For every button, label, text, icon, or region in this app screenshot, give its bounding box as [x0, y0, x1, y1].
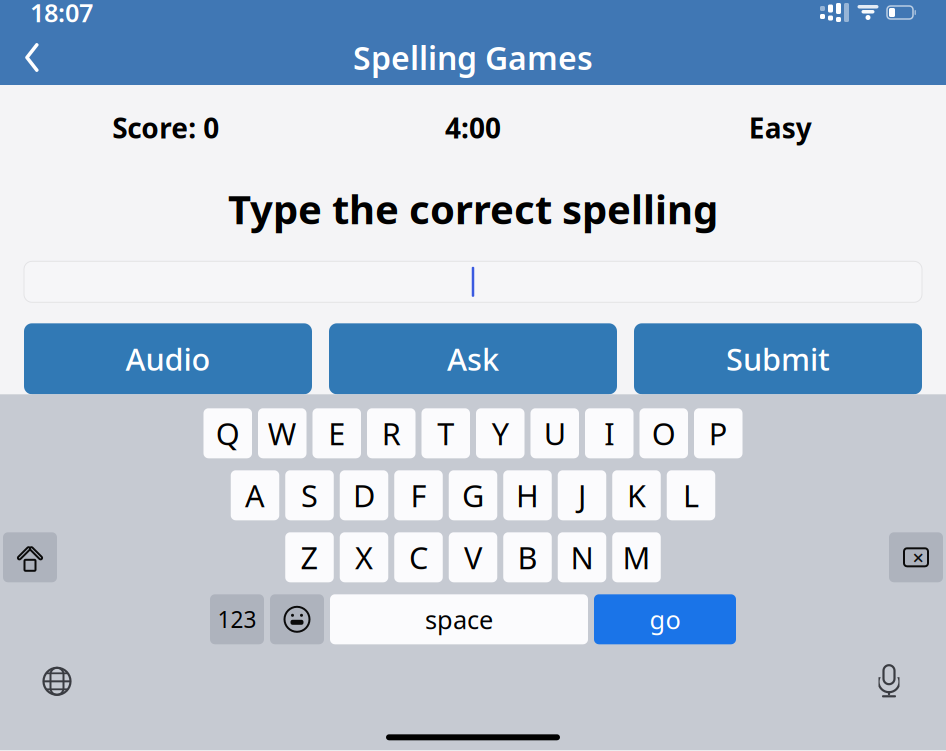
staticText: P	[709, 413, 728, 454]
button[interactable]: Shift	[3, 532, 57, 582]
staticText: S	[301, 475, 318, 516]
staticText: G	[462, 475, 484, 516]
button[interactable]: L	[667, 470, 715, 520]
button[interactable]: F	[394, 470, 443, 520]
button[interactable]: Dictation	[862, 658, 916, 704]
button[interactable]: Z	[285, 532, 334, 582]
staticText: Submit	[726, 338, 830, 379]
button[interactable]: T	[421, 408, 470, 458]
staticText: Score: 0	[112, 109, 219, 146]
staticText: K	[627, 475, 646, 516]
staticText: ×	[912, 544, 923, 571]
staticText: X	[355, 537, 373, 578]
button[interactable]: C	[394, 532, 443, 582]
staticText: Type the correct spelling	[228, 182, 718, 235]
button[interactable]: D	[340, 470, 388, 520]
button[interactable]: X	[340, 532, 388, 582]
staticText: N	[570, 537, 593, 578]
button[interactable]: V	[449, 532, 497, 582]
staticText: Z	[300, 537, 318, 578]
staticText: space	[425, 602, 493, 636]
staticText: Spelling Games	[353, 36, 593, 79]
button[interactable]: I	[585, 408, 633, 458]
staticText: M	[622, 537, 650, 578]
staticText: B	[517, 537, 537, 578]
button[interactable]: Back	[4, 34, 60, 80]
button[interactable]: W	[258, 408, 306, 458]
staticText: H	[516, 475, 539, 516]
button[interactable]: R	[367, 408, 415, 458]
button[interactable]: go	[594, 594, 736, 644]
button[interactable]: Emoji	[270, 594, 324, 644]
staticText: L	[683, 475, 699, 516]
staticText: 4:00	[445, 109, 501, 146]
staticText: E	[328, 413, 345, 454]
staticText: Easy	[749, 109, 812, 146]
button[interactable]: A	[231, 470, 279, 520]
staticText: W	[268, 413, 297, 454]
button[interactable]: U	[530, 408, 579, 458]
staticText: I	[604, 413, 614, 454]
button[interactable]: H	[503, 470, 552, 520]
button[interactable]: Next keyboard	[30, 658, 84, 704]
button[interactable]: M	[612, 532, 661, 582]
button[interactable]: N	[558, 532, 606, 582]
staticText: R	[382, 413, 401, 454]
button[interactable]: G	[449, 470, 497, 520]
button[interactable]: Audio	[24, 323, 312, 394]
button[interactable]: 123	[210, 594, 264, 644]
staticText: 18:07	[30, 0, 93, 29]
button[interactable]: space	[330, 594, 588, 644]
button[interactable]: K	[612, 470, 661, 520]
button[interactable]: Delete	[889, 532, 943, 582]
button[interactable]: S	[285, 470, 334, 520]
button[interactable]: J	[558, 470, 606, 520]
staticText: F	[410, 475, 426, 516]
button[interactable]: Y	[476, 408, 524, 458]
staticText: Ask	[447, 338, 499, 379]
staticText: 123	[217, 604, 256, 634]
staticText: Y	[492, 413, 509, 454]
staticText: D	[353, 475, 375, 516]
button[interactable]: Q	[203, 408, 252, 458]
button[interactable]: Submit	[634, 323, 922, 394]
button[interactable]: P	[694, 408, 742, 458]
staticText: V	[464, 537, 482, 578]
staticText: J	[578, 475, 586, 516]
button[interactable]: Ask	[329, 323, 617, 394]
staticText: Q	[216, 413, 240, 454]
button[interactable]: E	[312, 408, 361, 458]
staticText: A	[245, 475, 265, 516]
staticText: C	[409, 537, 428, 578]
staticText: T	[437, 413, 454, 454]
button[interactable]: O	[639, 408, 688, 458]
staticText: Audio	[125, 338, 210, 379]
staticText: go	[649, 602, 680, 636]
staticText: U	[544, 413, 566, 454]
button[interactable]: B	[503, 532, 552, 582]
staticText: O	[652, 413, 676, 454]
